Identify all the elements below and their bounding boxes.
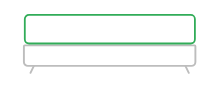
button[interactable]: Selected option: [24, 14, 196, 45]
